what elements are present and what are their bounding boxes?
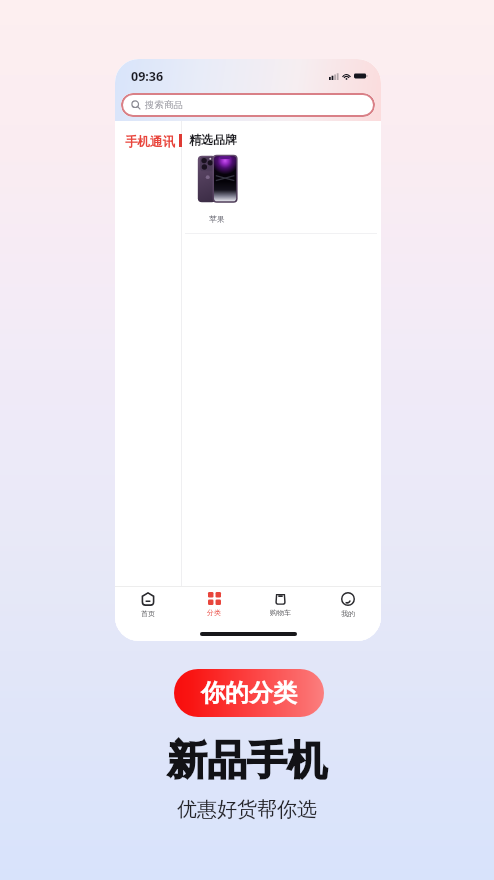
- staticText: 手机通讯: [125, 134, 175, 150]
- other: 分类: [208, 592, 221, 605]
- button[interactable]: 手机通讯: [119, 131, 181, 153]
- staticText: 苹果: [209, 214, 225, 224]
- button[interactable]: 苹果: [191, 154, 243, 224]
- button[interactable]: 分类: [181, 587, 247, 620]
- staticText: 分类: [207, 608, 221, 617]
- staticText: 搜索商品: [145, 99, 183, 111]
- staticText: 购物车: [270, 608, 291, 617]
- button[interactable]: 你的分类: [174, 669, 324, 717]
- button[interactable]: 购物车: [247, 587, 314, 620]
- staticText: 精选品牌: [189, 132, 237, 147]
- other: 首页: [141, 592, 155, 606]
- staticText: 优惠好货帮你选: [177, 797, 317, 822]
- other: 购物车: [274, 592, 287, 605]
- staticText: 新品手机: [167, 735, 327, 785]
- button[interactable]: 首页: [115, 587, 181, 620]
- staticText: 你的分类: [201, 678, 297, 708]
- button[interactable]: 搜索商品: [121, 93, 375, 117]
- staticText: 我的: [341, 609, 355, 618]
- staticText: 首页: [141, 609, 155, 618]
- button[interactable]: 我的: [314, 587, 381, 620]
- other: 我的: [341, 592, 355, 606]
- staticText: 09:36: [131, 68, 164, 85]
